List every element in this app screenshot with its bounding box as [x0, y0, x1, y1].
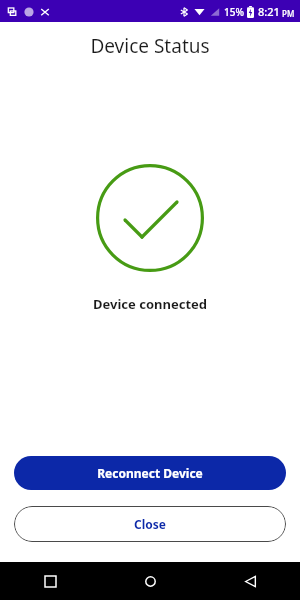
staticText: 8:21	[258, 4, 280, 19]
staticText: Reconnect Device	[97, 465, 203, 481]
staticText: PM	[282, 8, 295, 19]
button[interactable]: Recent apps	[0, 562, 100, 600]
staticText: Device Status	[90, 33, 210, 59]
button[interactable]: Back	[200, 562, 300, 600]
staticText: Close	[134, 516, 166, 532]
staticText: 15%	[224, 5, 244, 19]
button[interactable]: Home	[100, 562, 200, 600]
staticText: Device connected	[93, 295, 207, 313]
button[interactable]: Close	[14, 506, 286, 542]
button[interactable]: Reconnect Device	[14, 456, 286, 490]
